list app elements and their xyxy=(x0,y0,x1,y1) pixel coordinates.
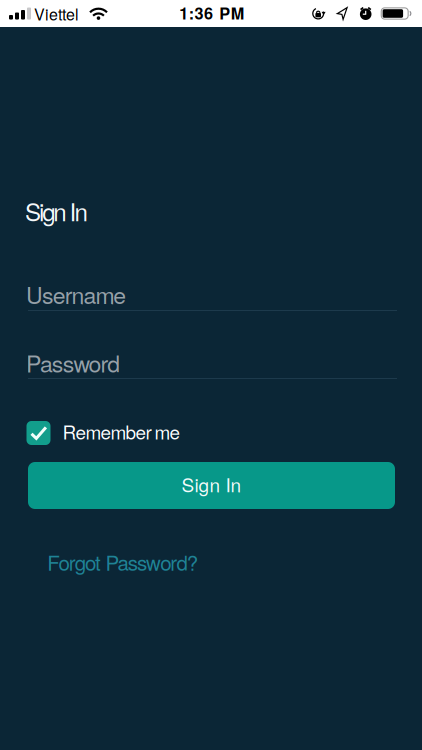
staticText: Viettel xyxy=(34,2,79,25)
staticText: Sign In xyxy=(181,470,241,498)
button[interactable]: Password xyxy=(26,340,397,384)
button[interactable]: Remember me xyxy=(26,419,180,447)
staticText: Forgot Password? xyxy=(47,547,198,577)
staticText: Sign In xyxy=(25,194,88,228)
staticText: Username xyxy=(26,277,126,310)
button[interactable]: Forgot Password? xyxy=(47,547,198,577)
button[interactable]: Username xyxy=(26,272,397,316)
button[interactable]: Sign In xyxy=(28,462,395,509)
staticText: Remember me xyxy=(62,418,180,445)
staticText: 1:36 PM xyxy=(179,1,245,24)
staticText: Password xyxy=(26,346,120,379)
